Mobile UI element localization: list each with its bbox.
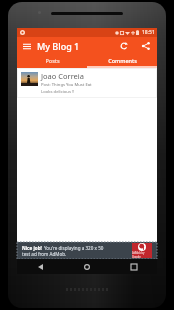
button[interactable]: Comments [87, 55, 157, 66]
staticText: Looks delicious !! [41, 89, 75, 95]
staticText: You're displaying a 320 x 50 [44, 245, 104, 251]
button[interactable]: Recent apps [110, 259, 157, 274]
button[interactable]: Share [139, 39, 153, 53]
staticText: Posts [45, 57, 60, 64]
staticText: AdMob by Google [132, 251, 152, 258]
staticText: 18:51 [142, 29, 155, 36]
staticText: My Blog 1 [37, 40, 80, 52]
button[interactable]: Joao Correia [18, 69, 156, 97]
button[interactable]: Nice job! [17, 242, 157, 259]
staticText: Joao Correia [41, 71, 84, 81]
button[interactable]: Home [63, 259, 110, 274]
staticText: Comments [108, 57, 137, 64]
staticText: Nice job! [22, 245, 44, 251]
button[interactable]: Refresh [117, 39, 131, 53]
staticText: test ad from AdMob. [22, 251, 67, 257]
button[interactable]: Posts [17, 55, 87, 66]
button[interactable]: Open navigation drawer [20, 39, 34, 53]
button[interactable]: Back [17, 259, 63, 274]
staticText: Post: Things You Must Eat [41, 82, 92, 88]
